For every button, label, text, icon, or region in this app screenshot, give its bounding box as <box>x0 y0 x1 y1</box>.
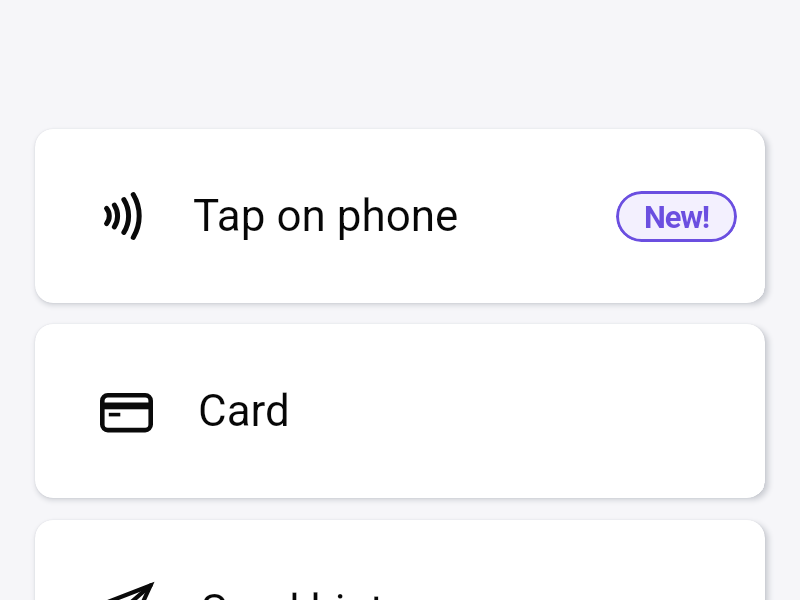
staticText: Tap on phone <box>193 190 459 242</box>
other: Card <box>100 387 153 435</box>
button[interactable]: Contactless payment <box>35 129 765 303</box>
staticText: New! <box>644 199 709 235</box>
other: Send <box>100 583 156 600</box>
button[interactable]: New! <box>616 191 737 242</box>
other: Contactless payment <box>100 192 148 240</box>
staticText: Card <box>198 385 290 437</box>
staticText: Send hint <box>201 585 385 600</box>
button[interactable]: Send <box>35 520 765 600</box>
button[interactable]: Card <box>35 324 765 498</box>
